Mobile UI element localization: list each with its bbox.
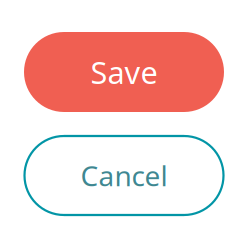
button[interactable]: Save <box>24 32 224 112</box>
staticText: Cancel <box>80 157 167 194</box>
button[interactable]: Cancel <box>24 136 223 215</box>
staticText: Save <box>90 52 157 92</box>
